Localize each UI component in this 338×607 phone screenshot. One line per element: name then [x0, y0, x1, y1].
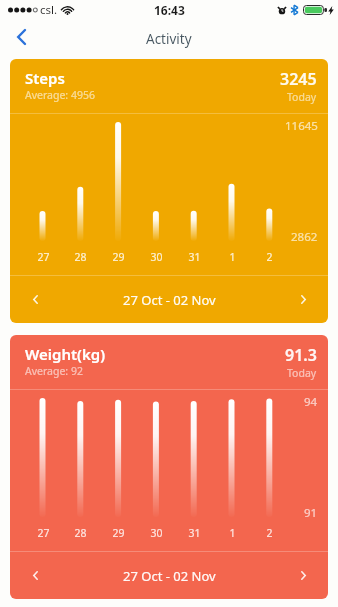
staticText: Average: 92 — [25, 364, 83, 378]
staticText: 16:43 — [154, 2, 185, 18]
button[interactable]: Next week — [289, 561, 317, 589]
button[interactable]: Back — [9, 25, 33, 49]
staticText: 28 — [74, 526, 87, 540]
staticText: 91.3 — [285, 344, 317, 366]
staticText: 31 — [188, 250, 201, 264]
button[interactable]: Previous week — [21, 561, 49, 589]
staticText: 27 — [37, 250, 50, 264]
staticText: 27 Oct - 02 Nov — [123, 567, 216, 585]
staticText: 1 — [229, 250, 236, 264]
staticText: 11645 — [285, 118, 318, 134]
staticText: 27 Oct - 02 Nov — [123, 291, 216, 309]
staticText: 31 — [188, 526, 201, 540]
staticText: Average: 4956 — [25, 88, 95, 102]
staticText: 1 — [229, 526, 236, 540]
button[interactable]: Weight(kg) — [10, 335, 328, 599]
staticText: 3245 — [280, 68, 317, 90]
staticText: Activity — [146, 30, 192, 48]
staticText: 30 — [150, 250, 163, 264]
staticText: Weight(kg) — [25, 344, 105, 364]
staticText: 29 — [112, 526, 125, 540]
staticText: csl. — [40, 2, 58, 18]
staticText: 2 — [266, 250, 273, 264]
staticText: 2862 — [291, 229, 318, 245]
button[interactable]: Next week — [289, 285, 317, 313]
staticText: 28 — [74, 250, 87, 264]
button[interactable]: Steps — [10, 59, 328, 323]
staticText: 30 — [150, 526, 163, 540]
button[interactable]: Previous week — [21, 285, 49, 313]
staticText: 27 — [37, 526, 50, 540]
staticText: Today — [287, 90, 317, 104]
staticText: 2 — [266, 526, 273, 540]
staticText: Steps — [25, 68, 65, 88]
staticText: 91 — [304, 505, 318, 521]
staticText: 29 — [112, 250, 125, 264]
staticText: 94 — [304, 394, 318, 410]
staticText: Today — [287, 366, 317, 380]
